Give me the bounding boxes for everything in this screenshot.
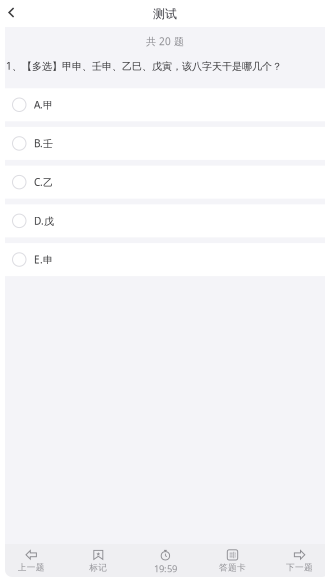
staticText: 下一题 <box>286 562 313 573</box>
staticText: A.甲 <box>34 98 53 112</box>
button[interactable]: 标记 <box>65 543 132 578</box>
button[interactable]: 答题卡 <box>199 543 266 578</box>
staticText: E.申 <box>34 253 53 266</box>
staticText: 答题卡 <box>219 562 246 573</box>
button[interactable]: 下一题 <box>266 543 325 578</box>
staticText: C.乙 <box>34 175 53 189</box>
button[interactable]: 上一题 <box>0 543 65 578</box>
button[interactable]: 19:59 <box>132 543 199 578</box>
staticText: 1、【多选】甲申、壬申、乙巳、戊寅，该八字天干是哪几个？ <box>6 59 282 73</box>
button[interactable]: E.申 <box>5 243 325 276</box>
staticText: 上一题 <box>18 562 45 573</box>
staticText: 测试 <box>153 6 177 21</box>
staticText: B.壬 <box>34 137 53 150</box>
staticText: D.戊 <box>34 214 54 228</box>
button[interactable]: C.乙 <box>5 166 325 199</box>
staticText: 标记 <box>89 562 107 573</box>
button[interactable]: D.戊 <box>5 204 325 237</box>
button[interactable]: B.壬 <box>5 127 325 160</box>
staticText: 19:59 <box>154 562 177 575</box>
button[interactable]: A.甲 <box>5 88 325 121</box>
staticText: 共 20 题 <box>146 34 184 48</box>
button[interactable]: Back <box>5 0 24 27</box>
